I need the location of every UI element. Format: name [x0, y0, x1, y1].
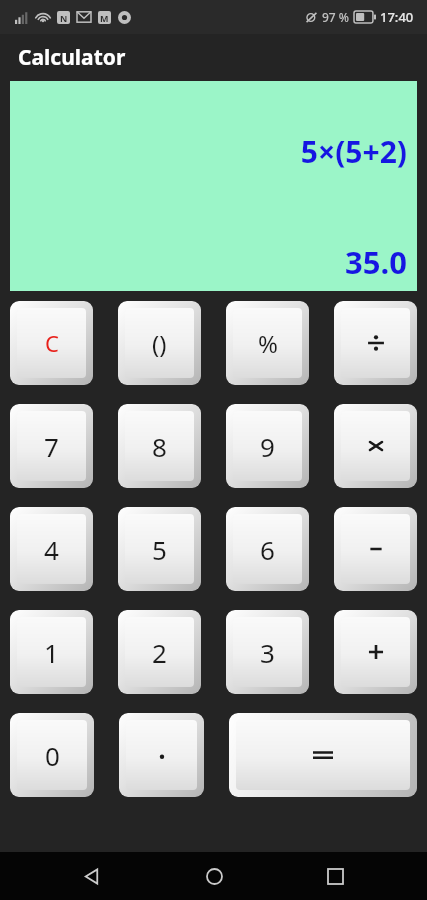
button[interactable]: Decimal point [119, 713, 204, 797]
staticText: 9 [260, 429, 275, 464]
button[interactable]: 1 [10, 610, 93, 694]
staticText: 5 [152, 532, 167, 567]
staticText: 1 [44, 635, 59, 670]
staticText: 6 [260, 532, 275, 567]
button[interactable]: Plus [334, 610, 417, 694]
staticText: () [152, 327, 167, 360]
button[interactable]: 9 [226, 404, 309, 488]
staticText: 5×(5+2) [300, 131, 407, 172]
button[interactable]: Back [72, 856, 112, 896]
button[interactable]: 5 [118, 507, 201, 591]
button[interactable]: 2 [118, 610, 201, 694]
staticText: 0 [45, 738, 60, 773]
button[interactable]: 4 [10, 507, 93, 591]
button[interactable]: Home [194, 856, 234, 896]
staticText: 97 % [322, 9, 350, 25]
staticText: 35.0 [345, 241, 407, 283]
button[interactable]: 8 [118, 404, 201, 488]
button[interactable]: Parentheses [118, 301, 201, 385]
button[interactable]: 6 [226, 507, 309, 591]
staticText: 3 [260, 635, 275, 670]
staticText: 4 [44, 532, 59, 567]
button[interactable]: Minus [334, 507, 417, 591]
staticText: Calculator [18, 43, 126, 72]
staticText: % [258, 327, 278, 360]
staticText: 7 [44, 429, 59, 464]
button[interactable]: Multiply [334, 404, 417, 488]
button[interactable]: Clear [10, 301, 93, 385]
button[interactable]: Percent [226, 301, 309, 385]
button[interactable]: 3 [226, 610, 309, 694]
staticText: 8 [152, 429, 167, 464]
staticText: N [60, 12, 68, 24]
button[interactable]: Recents [315, 856, 355, 896]
staticText: 17:40 [380, 8, 414, 26]
staticText: C [45, 328, 59, 358]
button[interactable]: 7 [10, 404, 93, 488]
staticText: 2 [152, 635, 167, 670]
button[interactable]: Divide [334, 301, 417, 385]
button[interactable]: Equals [229, 713, 417, 797]
button[interactable]: 0 [10, 713, 94, 797]
staticText: M [100, 12, 109, 24]
